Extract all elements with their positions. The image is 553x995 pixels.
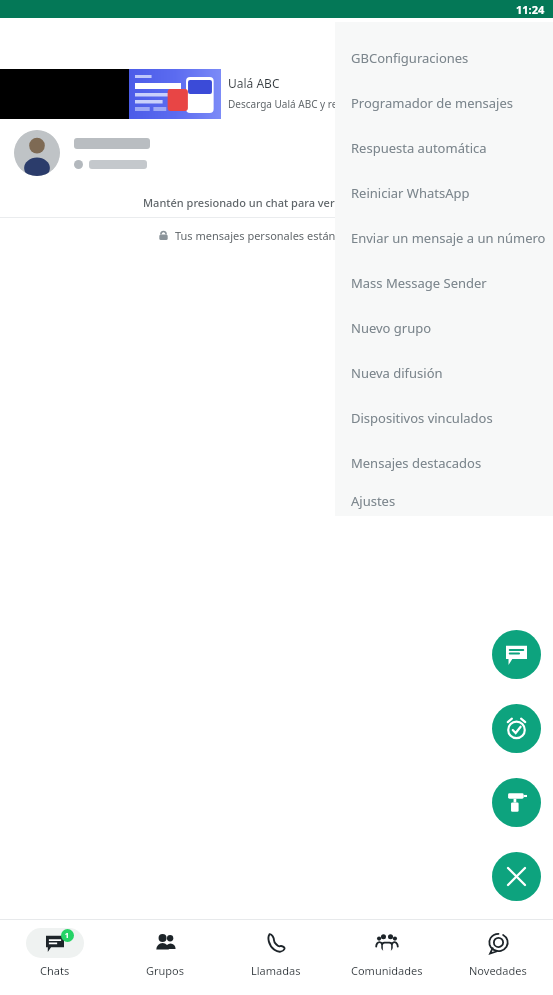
button[interactable]: Reiniciar WhatsApp	[335, 170, 553, 215]
button[interactable]: 1	[0, 920, 110, 995]
staticText: GBConfiguraciones	[351, 49, 469, 67]
staticText: Chats	[40, 963, 70, 978]
button[interactable]: Dispositivos vinculados	[335, 395, 553, 440]
button[interactable]: Enviar un mensaje a un número	[335, 215, 553, 260]
staticText: Dispositivos vinculados	[351, 409, 493, 427]
staticText: Mantén presionado un chat para ver más o…	[143, 195, 410, 210]
staticText: 1	[65, 931, 70, 941]
staticText: Programador de mensajes	[351, 94, 513, 112]
staticText: Ualá ABC	[228, 75, 280, 91]
staticText: Grupos	[146, 963, 185, 978]
button[interactable]: Nuevo grupo	[335, 305, 553, 350]
staticText: Tus mensajes personales están	[175, 228, 339, 243]
staticText: Llamadas	[251, 963, 301, 978]
button[interactable]: Tema	[492, 778, 541, 827]
button[interactable]: Mass Message Sender	[335, 260, 553, 305]
button[interactable]: Llamadas	[220, 920, 331, 995]
staticText: Nuevo grupo	[351, 319, 432, 337]
staticText: Comunidades	[351, 963, 423, 978]
staticText: Novedades	[469, 963, 527, 978]
staticText: Mensajes destacados	[351, 454, 482, 472]
staticText: Ajustes	[351, 492, 396, 510]
staticText: Enviar un mensaje a un número	[351, 229, 546, 247]
staticText: Descarga Ualá ABC y recib	[228, 97, 351, 111]
button[interactable]: Cerrar	[492, 852, 541, 901]
button[interactable]: Grupos	[110, 920, 220, 995]
button[interactable]: Novedades	[442, 920, 553, 995]
button[interactable]: Nueva difusión	[335, 350, 553, 395]
staticText: cifrados de	[339, 228, 396, 243]
button[interactable]: Comunidades	[331, 920, 442, 995]
staticText: 11:24	[516, 2, 545, 17]
button[interactable]: Programador de mensajes	[335, 80, 553, 125]
staticText: Respuesta automática	[351, 139, 487, 157]
button[interactable]: Programar mensaje	[492, 704, 541, 753]
button[interactable]: Respuesta automática	[335, 125, 553, 170]
button[interactable]	[0, 119, 553, 187]
button[interactable]: GBConfiguraciones	[335, 35, 553, 80]
button[interactable]: Mensajes destacados	[335, 440, 553, 485]
button[interactable]: Nuevo chat	[492, 630, 541, 679]
staticText: Mass Message Sender	[351, 274, 487, 292]
staticText: Nueva difusión	[351, 364, 443, 382]
staticText: Reiniciar WhatsApp	[351, 184, 470, 202]
button[interactable]: Ajustes	[335, 485, 553, 516]
